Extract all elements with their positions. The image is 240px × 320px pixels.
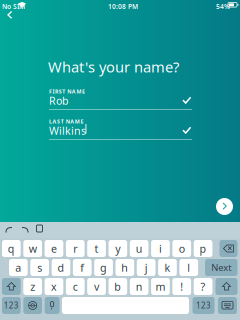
button[interactable]: i [151, 240, 170, 257]
staticText: b [114, 279, 121, 294]
button[interactable]: x [45, 278, 63, 295]
staticText: q [8, 241, 15, 256]
staticText: w [29, 241, 37, 256]
button[interactable]: Shift [2, 278, 21, 295]
button[interactable]: Undo [3, 224, 15, 236]
staticText: z [30, 279, 35, 294]
staticText: y [115, 241, 120, 256]
button[interactable]: Hide keyboard [218, 297, 237, 314]
button[interactable]: l [179, 259, 198, 276]
button[interactable]: y [108, 240, 127, 257]
staticText: h [121, 260, 128, 275]
staticText: s [37, 260, 42, 275]
button[interactable]: p [194, 240, 212, 257]
staticText: f [80, 260, 84, 275]
staticText: No SIM [2, 2, 25, 11]
button[interactable]: s [30, 259, 49, 276]
button[interactable]: Backspace [219, 240, 237, 257]
staticText: u [136, 241, 143, 256]
staticText: l [187, 260, 190, 275]
staticText: n [136, 279, 143, 294]
button[interactable]: 123 [2, 297, 21, 314]
button[interactable]: Back [0, 5, 20, 25]
button[interactable]: FIRST NAME [49, 87, 192, 112]
staticText: 54% [216, 2, 230, 11]
staticText: g [100, 260, 107, 275]
button[interactable]: o [172, 240, 191, 257]
staticText: Wilkins [49, 124, 86, 138]
button[interactable]: f [73, 259, 92, 276]
button[interactable]: n [130, 278, 148, 295]
button[interactable]: d [52, 259, 70, 276]
button[interactable]: b [108, 278, 127, 295]
button[interactable]: c [66, 278, 85, 295]
staticText: o [179, 241, 185, 256]
staticText: r [73, 241, 77, 256]
button[interactable]: e [45, 240, 63, 257]
button[interactable]: Next [205, 259, 237, 276]
staticText: j [145, 260, 148, 275]
staticText: LAST NAME [49, 118, 83, 125]
button[interactable]: Switch keyboard [23, 297, 42, 314]
button[interactable]: 123 [192, 297, 214, 314]
button[interactable]: a [9, 259, 28, 276]
button[interactable]: r [66, 240, 85, 257]
staticText: 10:08 PM [108, 2, 138, 11]
button[interactable]: ! [172, 278, 191, 295]
staticText: FIRST NAME [49, 88, 85, 95]
button[interactable]: ? [194, 278, 212, 295]
button[interactable]: u [130, 240, 148, 257]
staticText: x [51, 279, 57, 294]
staticText: i [159, 241, 162, 256]
button[interactable]: q [2, 240, 21, 257]
staticText: ? [201, 279, 206, 294]
button[interactable]: m [151, 278, 170, 295]
staticText: a [15, 260, 21, 275]
staticText: Next [211, 261, 231, 274]
staticText: v [94, 279, 99, 294]
button[interactable]: h [115, 259, 134, 276]
staticText: What's your name? [48, 57, 179, 76]
staticText: d [57, 260, 64, 275]
staticText: t [94, 241, 98, 256]
button[interactable]: Dictate [45, 297, 60, 314]
button[interactable]: z [23, 278, 42, 295]
staticText: Rob [49, 94, 69, 108]
staticText: k [164, 260, 170, 275]
button[interactable]: k [158, 259, 177, 276]
button[interactable]: t [87, 240, 106, 257]
staticText: p [200, 241, 207, 256]
button[interactable]: Shift [215, 278, 237, 295]
button[interactable]: v [87, 278, 106, 295]
button[interactable]: Paste [35, 224, 47, 236]
button[interactable]: Redo [19, 224, 31, 236]
staticText: c [73, 279, 78, 294]
staticText: ! [180, 279, 183, 294]
staticText: m [155, 279, 165, 294]
button[interactable]: g [94, 259, 113, 276]
button[interactable]: LAST NAME [49, 117, 192, 142]
button[interactable]: j [137, 259, 155, 276]
staticText: 123 [4, 300, 19, 311]
button[interactable]: w [23, 240, 42, 257]
staticText: e [51, 241, 57, 256]
button[interactable]: Next [216, 198, 233, 215]
staticText: 123 [196, 300, 211, 311]
